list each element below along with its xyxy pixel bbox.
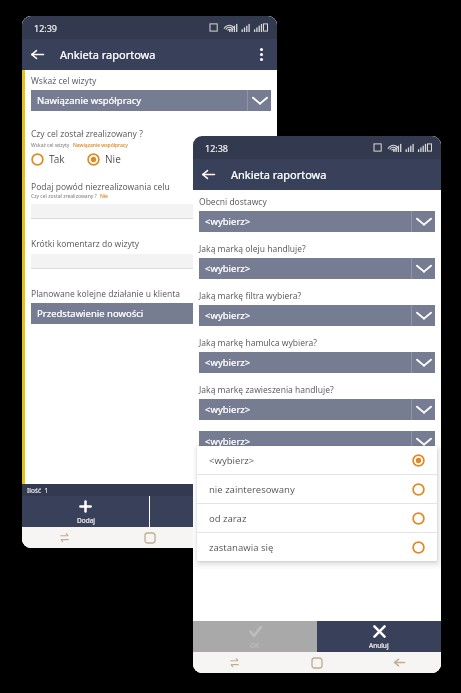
button[interactable]: Back (193, 159, 224, 190)
staticText: 12:39 (34, 22, 58, 34)
button[interactable]: Recents (193, 652, 275, 673)
button[interactable]: Back (22, 39, 53, 70)
staticText: zastanawia się (209, 541, 412, 554)
button[interactable]: Home (107, 527, 192, 548)
staticText: Jaką markę hamulca wybiera? (199, 337, 317, 349)
button[interactable]: <wybierz> (199, 478, 435, 499)
button[interactable]: <wybierz> (197, 446, 437, 474)
staticText: <wybierz> (209, 454, 412, 467)
staticText: Ankieta raportowa (60, 47, 156, 62)
staticText: <wybierz> (205, 435, 411, 448)
staticText: <wybierz> (205, 403, 411, 416)
button[interactable]: <wybierz> (199, 399, 435, 420)
staticText: Nie (105, 152, 121, 166)
staticText: Planowane kolejne działanie u klienta (31, 288, 181, 300)
staticText: Jaką markę zawieszenia handluje? (199, 384, 334, 396)
button[interactable]: <wybierz> (199, 258, 435, 279)
button[interactable]: Recents (22, 527, 107, 548)
staticText: Wskaż cel wizyty (31, 75, 97, 87)
button[interactable]: <wybierz> (199, 431, 435, 452)
staticText: Anuluj (204, 516, 224, 525)
button[interactable]: Nie (87, 152, 121, 166)
staticText: Wskaż cel wizyty (31, 142, 70, 149)
staticText: <wybierz> (205, 215, 411, 228)
button[interactable]: Home (275, 652, 358, 673)
staticText: 12:38 (205, 142, 229, 154)
staticText: Czy cel został zrealizowany ? (31, 128, 143, 140)
staticText: Nie (100, 193, 108, 200)
button[interactable]: Dodaj (22, 496, 149, 527)
staticText: Ankieta raportowa (231, 167, 327, 182)
button[interactable] (31, 204, 271, 218)
staticText: Gotowość do współpracy (199, 463, 299, 475)
staticText: Dodaj (77, 516, 95, 525)
button[interactable]: More options (246, 39, 277, 70)
button[interactable]: <wybierz> (199, 305, 435, 326)
staticText: <wybierz> (205, 262, 411, 275)
staticText: Tak (49, 152, 65, 166)
staticText: Jaką markę filtra wybiera? (199, 290, 302, 302)
button[interactable]: <wybierz> (199, 211, 435, 232)
staticText: Przedstawienie nowości (37, 307, 271, 320)
button[interactable]: od zaraz (197, 504, 437, 532)
button[interactable] (31, 254, 271, 268)
button[interactable]: Przedstawienie nowości (31, 303, 271, 324)
button[interactable]: nie zainteresowany (197, 475, 437, 503)
staticText: OK (250, 641, 260, 650)
button[interactable]: Nawiązanie współpracy (31, 90, 271, 111)
button[interactable]: Anuluj (317, 621, 441, 652)
staticText: Anuluj (369, 641, 389, 650)
staticText: <wybierz> (205, 309, 411, 322)
staticText: <wybierz> (205, 356, 411, 369)
staticText: Podaj powód niezrealizowania celu (31, 181, 170, 193)
button[interactable]: zastanawia się (197, 533, 437, 561)
staticText: Obecni dostawcy (199, 196, 267, 208)
staticText: <wybierz> (205, 482, 411, 495)
button[interactable]: Anuluj (150, 496, 277, 527)
staticText: Jaką marką oleju handluje? (199, 243, 306, 255)
staticText: Czy cel został zrealizowany ? (31, 193, 97, 200)
staticText: Nawiązanie współpracy (73, 142, 128, 149)
button[interactable]: Tak (31, 152, 65, 166)
button[interactable]: Back (358, 652, 441, 673)
staticText: Krótki komentarz do wizyty (31, 238, 140, 250)
staticText: Ilość 1 (27, 486, 49, 495)
button[interactable]: <wybierz> (199, 352, 435, 373)
staticText: Nawiązanie współpracy (37, 94, 247, 107)
staticText: od zaraz (209, 512, 412, 525)
staticText: nie zainteresowany (209, 483, 412, 496)
